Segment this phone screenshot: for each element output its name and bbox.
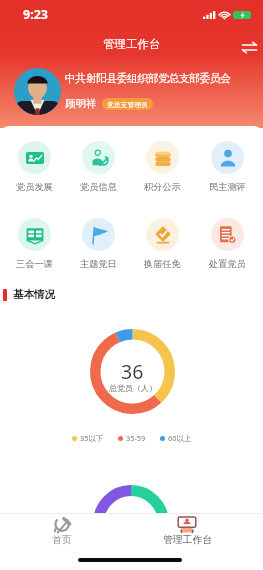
staticText: 35以下 — [80, 433, 104, 443]
staticText: 基本情况 — [13, 288, 55, 301]
staticText: 36 — [121, 358, 144, 385]
staticText: 民主测评 — [209, 181, 246, 193]
button[interactable]: 管理工作台 — [155, 514, 219, 556]
button[interactable]: 换届任免 — [130, 218, 195, 270]
staticText: 党员信息 — [80, 181, 117, 193]
button[interactable]: 三会一课 — [2, 218, 66, 270]
staticText: 换届任免 — [144, 258, 181, 270]
staticText: 首页 — [52, 534, 72, 546]
button[interactable]: 头像 — [14, 68, 61, 115]
staticText: 党总支管理员 — [107, 100, 148, 109]
button[interactable]: 切换组织 — [237, 35, 261, 59]
button[interactable]: 处置党员 — [195, 218, 260, 270]
staticText: 总党员（人） — [109, 383, 157, 393]
button[interactable]: 积分公示 — [130, 141, 195, 193]
staticText: 35-59 — [126, 433, 146, 443]
staticText: 处置党员 — [209, 258, 246, 270]
staticText: 管理工作台 — [103, 37, 161, 51]
staticText: 中共射阳县委组织部党总支部委员会 — [65, 72, 231, 86]
button[interactable]: 主题党日 — [66, 218, 130, 270]
button[interactable]: 首页 — [30, 514, 94, 556]
staticText: 管理工作台 — [163, 534, 212, 546]
button[interactable]: 党员信息 — [66, 141, 130, 193]
staticText: 三会一课 — [16, 258, 53, 270]
staticText: 顾明祥 — [65, 97, 97, 110]
staticText: 9:23 — [23, 6, 48, 23]
staticText: 主题党日 — [80, 258, 117, 270]
button[interactable]: 民主测评 — [195, 141, 260, 193]
staticText: 60以上 — [168, 433, 192, 443]
staticText: 积分公示 — [144, 181, 181, 193]
button[interactable]: 党员发展 — [2, 141, 66, 193]
staticText: 党员发展 — [16, 181, 53, 193]
